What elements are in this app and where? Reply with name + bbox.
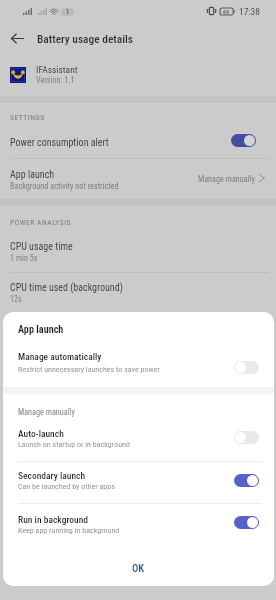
button[interactable]: Power consumption alert toggle (231, 134, 256, 147)
staticText: CPU time used (background) (10, 282, 123, 294)
staticText: Run in background (18, 514, 89, 525)
button[interactable] (3, 419, 274, 461)
button[interactable]: Secondary launch toggle (234, 474, 259, 487)
staticText: Restrict unnecessary launches to save po… (18, 365, 160, 374)
button[interactable] (0, 232, 276, 269)
staticText: Version: 1.1 (36, 75, 75, 85)
staticText: 1 (66, 8, 70, 16)
button[interactable] (0, 273, 276, 310)
staticText: Manage manually (198, 174, 255, 184)
staticText: Can be launched by other apps (18, 482, 115, 491)
button[interactable] (0, 128, 276, 157)
staticText: SETTINGS (10, 113, 45, 122)
staticText: App launch (18, 324, 64, 336)
staticText: 17:38 (239, 6, 260, 17)
staticText: Power consumption alert (10, 137, 109, 149)
button[interactable] (0, 158, 276, 198)
staticText: 1 min 5s (10, 253, 38, 263)
staticText: IFAssistant (36, 64, 78, 75)
button[interactable] (3, 504, 274, 545)
button[interactable]: Manage automatically toggle (234, 361, 259, 374)
staticText: App launch (10, 169, 55, 181)
staticText: OK (132, 562, 145, 574)
staticText: Auto-launch (18, 428, 64, 439)
button[interactable]: Auto-launch toggle (234, 431, 259, 444)
button[interactable] (3, 462, 274, 503)
staticText: Background activity not restricted (10, 181, 119, 191)
button[interactable] (3, 345, 274, 385)
staticText: Secondary launch (18, 470, 86, 481)
staticText: Launch on startup or in background (18, 440, 130, 449)
staticText: Keep app running in background (18, 526, 120, 535)
staticText: 69 (223, 8, 230, 15)
button[interactable]: OK (3, 552, 274, 584)
staticText: Manage manually (18, 407, 75, 417)
staticText: POWER ANALYSIS (10, 218, 72, 227)
staticText: CPU usage time (10, 241, 73, 253)
button[interactable]: Back (5, 26, 30, 51)
staticText: Manage automatically (18, 351, 102, 362)
staticText: 12s (10, 294, 22, 304)
staticText: Battery usage details (37, 32, 133, 45)
button[interactable]: Run in background toggle (234, 516, 259, 529)
